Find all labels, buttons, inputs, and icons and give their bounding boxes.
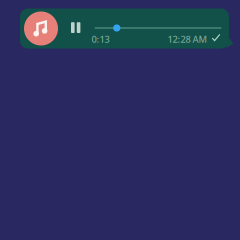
staticText: 12:28 AM [167, 33, 207, 45]
button[interactable]: 0:13 [20, 8, 229, 48]
staticText: 0:13 [91, 33, 109, 45]
